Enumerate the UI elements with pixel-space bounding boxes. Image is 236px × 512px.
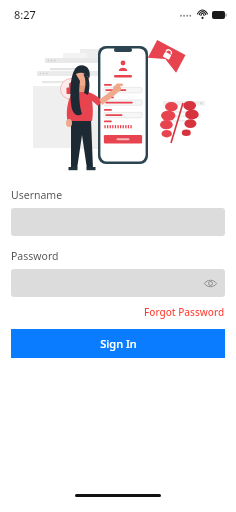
button[interactable]: Show password (11, 269, 225, 297)
staticText: Password (11, 249, 59, 263)
staticText: 8:27 (14, 7, 36, 22)
button[interactable]: Forgot Password (144, 305, 225, 319)
button[interactable]: Sign In (11, 329, 225, 358)
staticText: Sign In (100, 336, 137, 351)
button[interactable]: Show password (201, 274, 219, 292)
staticText: Username (11, 188, 63, 202)
